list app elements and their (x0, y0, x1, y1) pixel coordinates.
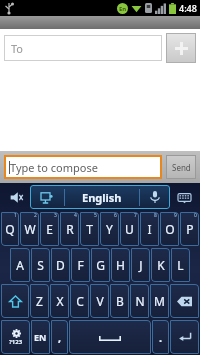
button[interactable]: S (31, 248, 50, 282)
button[interactable]: Type to compose (4, 155, 162, 179)
staticText: 5 (94, 212, 97, 219)
staticText: EN (34, 331, 47, 343)
button[interactable]: English (65, 185, 139, 209)
button[interactable]: X (50, 284, 69, 318)
staticText: W (24, 221, 36, 237)
staticText: F (77, 257, 84, 273)
button[interactable]: 0 (180, 212, 199, 246)
button[interactable]: M (150, 284, 169, 318)
button[interactable]: 9 (160, 212, 179, 246)
staticText: M (154, 293, 165, 309)
staticText: 4:48 (179, 2, 197, 14)
staticText: I (147, 221, 152, 237)
button[interactable]: H (111, 248, 130, 282)
staticText: Type to compose (10, 160, 98, 175)
button[interactable]: V (90, 284, 109, 318)
button[interactable]: To (4, 35, 162, 61)
button[interactable]: Keyboard settings (170, 185, 198, 209)
button[interactable]: Backspace (170, 284, 199, 318)
staticText: X (56, 293, 64, 309)
button[interactable]: Voice input (140, 185, 170, 209)
staticText: English (82, 190, 122, 205)
button[interactable]: Space (69, 320, 151, 354)
button[interactable]: Comma (51, 320, 68, 354)
staticText: 4 (74, 212, 77, 219)
button[interactable]: K (151, 248, 170, 282)
button[interactable]: Symbols (1, 320, 30, 354)
button[interactable]: L (171, 248, 190, 282)
button[interactable]: A (10, 248, 30, 282)
staticText: To (11, 41, 24, 56)
staticText: En (119, 5, 127, 13)
staticText: Y (106, 221, 113, 237)
button[interactable]: 1 (1, 212, 19, 246)
button[interactable]: 8 (140, 212, 159, 246)
button[interactable]: Enter (170, 320, 199, 354)
button[interactable]: C (70, 284, 89, 318)
staticText: ?123 (9, 338, 23, 346)
button[interactable]: Period (152, 320, 169, 354)
staticText: R (66, 221, 74, 237)
staticText: 9 (174, 212, 177, 219)
staticText: O (165, 221, 175, 237)
button[interactable]: Add recipient (166, 33, 196, 63)
staticText: , (58, 330, 62, 345)
staticText: 7 (134, 212, 137, 219)
staticText: 0 (194, 212, 197, 219)
staticText: 3 (54, 212, 57, 219)
button[interactable]: Emoji (30, 185, 64, 209)
staticText: C (76, 293, 84, 309)
button[interactable]: Shift (1, 284, 29, 318)
button[interactable]: 5 (80, 212, 99, 246)
staticText: Z (36, 293, 43, 309)
staticText: J (139, 257, 143, 273)
staticText: S (37, 257, 44, 273)
button[interactable]: 6 (100, 212, 119, 246)
staticText: V (96, 293, 104, 309)
button[interactable]: Z (30, 284, 49, 318)
staticText: G (96, 257, 105, 273)
button[interactable]: Send (166, 155, 196, 179)
staticText: 8 (154, 212, 157, 219)
button[interactable]: D (51, 248, 70, 282)
staticText: Q (5, 221, 15, 237)
button[interactable]: 2 (20, 212, 39, 246)
staticText: N (135, 293, 145, 309)
button[interactable]: N (130, 284, 149, 318)
staticText: . (159, 330, 163, 345)
staticText: K (157, 257, 165, 273)
staticText: B (116, 293, 124, 309)
button[interactable]: F (71, 248, 90, 282)
button[interactable]: Sound (2, 185, 30, 209)
staticText: Send (172, 162, 191, 173)
button[interactable]: B (110, 284, 129, 318)
staticText: 6 (114, 212, 117, 219)
staticText: L (177, 257, 184, 273)
staticText: U (125, 221, 134, 237)
staticText: E (46, 221, 53, 237)
staticText: A (16, 257, 24, 273)
staticText: T (86, 221, 93, 237)
staticText: P (186, 221, 194, 237)
button[interactable]: J (131, 248, 150, 282)
button[interactable]: 3 (40, 212, 59, 246)
button[interactable]: 4 (60, 212, 79, 246)
button[interactable]: 7 (120, 212, 139, 246)
button[interactable]: Language (31, 320, 50, 354)
button[interactable]: G (91, 248, 110, 282)
staticText: H (116, 257, 125, 273)
staticText: D (56, 257, 65, 273)
staticText: 1 (14, 212, 17, 219)
staticText: 2 (34, 212, 37, 219)
